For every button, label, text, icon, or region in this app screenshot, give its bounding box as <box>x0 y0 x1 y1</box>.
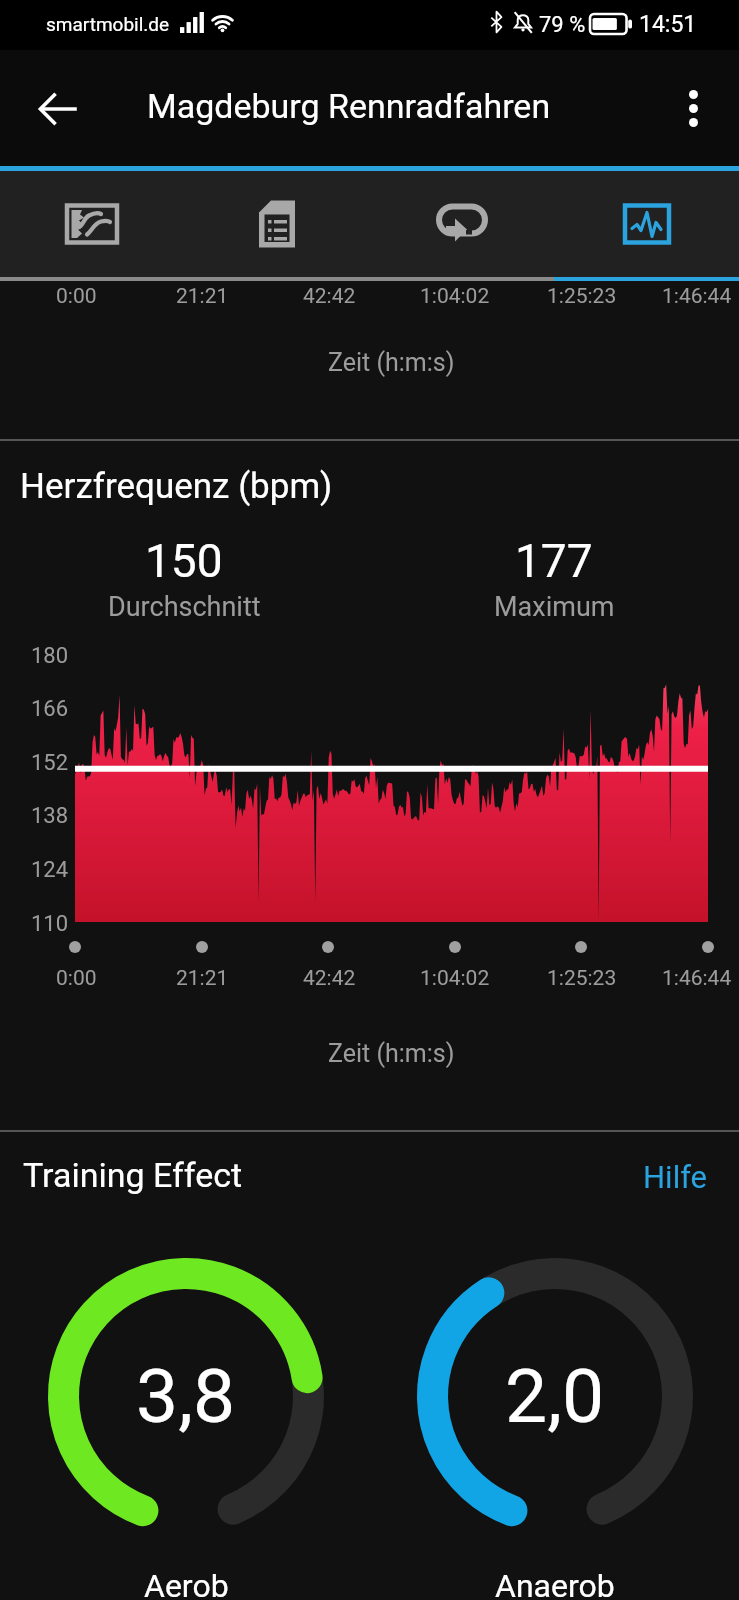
staticText: Training Effect <box>23 1155 243 1195</box>
staticText: 14:51 <box>639 11 697 38</box>
staticText: 150 <box>145 534 223 588</box>
staticText: Durchschnitt <box>108 591 261 623</box>
staticText: 138 <box>31 803 69 829</box>
staticText: Aerob <box>144 1567 229 1600</box>
button[interactable]: Back <box>22 73 94 145</box>
button[interactable]: Laps <box>369 171 554 277</box>
staticText: 0:00 <box>56 284 97 309</box>
staticText: 166 <box>31 696 69 722</box>
button[interactable]: Hilfe <box>630 1148 720 1206</box>
staticText: Hilfe <box>643 1159 708 1195</box>
staticText: 1:04:02 <box>420 966 490 991</box>
staticText: 110 <box>31 911 69 937</box>
staticText: 2,0 <box>505 1352 605 1440</box>
staticText: 1:04:02 <box>420 284 490 309</box>
staticText: 124 <box>31 857 69 883</box>
staticText: Anaerob <box>495 1567 615 1600</box>
staticText: 42:42 <box>303 284 356 309</box>
staticText: 177 <box>515 534 593 588</box>
staticText: Zeit (h:m:s) <box>328 348 455 377</box>
staticText: 0:00 <box>56 966 97 991</box>
staticText: 79 % <box>539 12 586 38</box>
staticText: 3,8 <box>136 1352 236 1440</box>
button[interactable]: Charts <box>554 171 739 277</box>
staticText: smartmobil.de <box>46 13 170 35</box>
button[interactable]: More options <box>657 72 729 144</box>
staticText: 180 <box>31 643 69 669</box>
staticText: 21:21 <box>176 966 229 991</box>
staticText: Magdeburg Rennradfahren <box>147 86 551 126</box>
staticText: 1:25:23 <box>547 284 617 309</box>
button[interactable]: Details <box>184 171 369 277</box>
staticText: Herzfrequenz (bpm) <box>20 466 333 507</box>
staticText: 1:46:44 <box>662 284 732 309</box>
staticText: 42:42 <box>303 966 356 991</box>
staticText: 1:25:23 <box>547 966 617 991</box>
button[interactable]: Map <box>0 171 184 277</box>
staticText: 152 <box>31 750 69 776</box>
staticText: Zeit (h:m:s) <box>328 1039 455 1068</box>
staticText: 1:46:44 <box>662 966 732 991</box>
staticText: 21:21 <box>176 284 229 309</box>
staticText: Maximum <box>494 591 615 623</box>
